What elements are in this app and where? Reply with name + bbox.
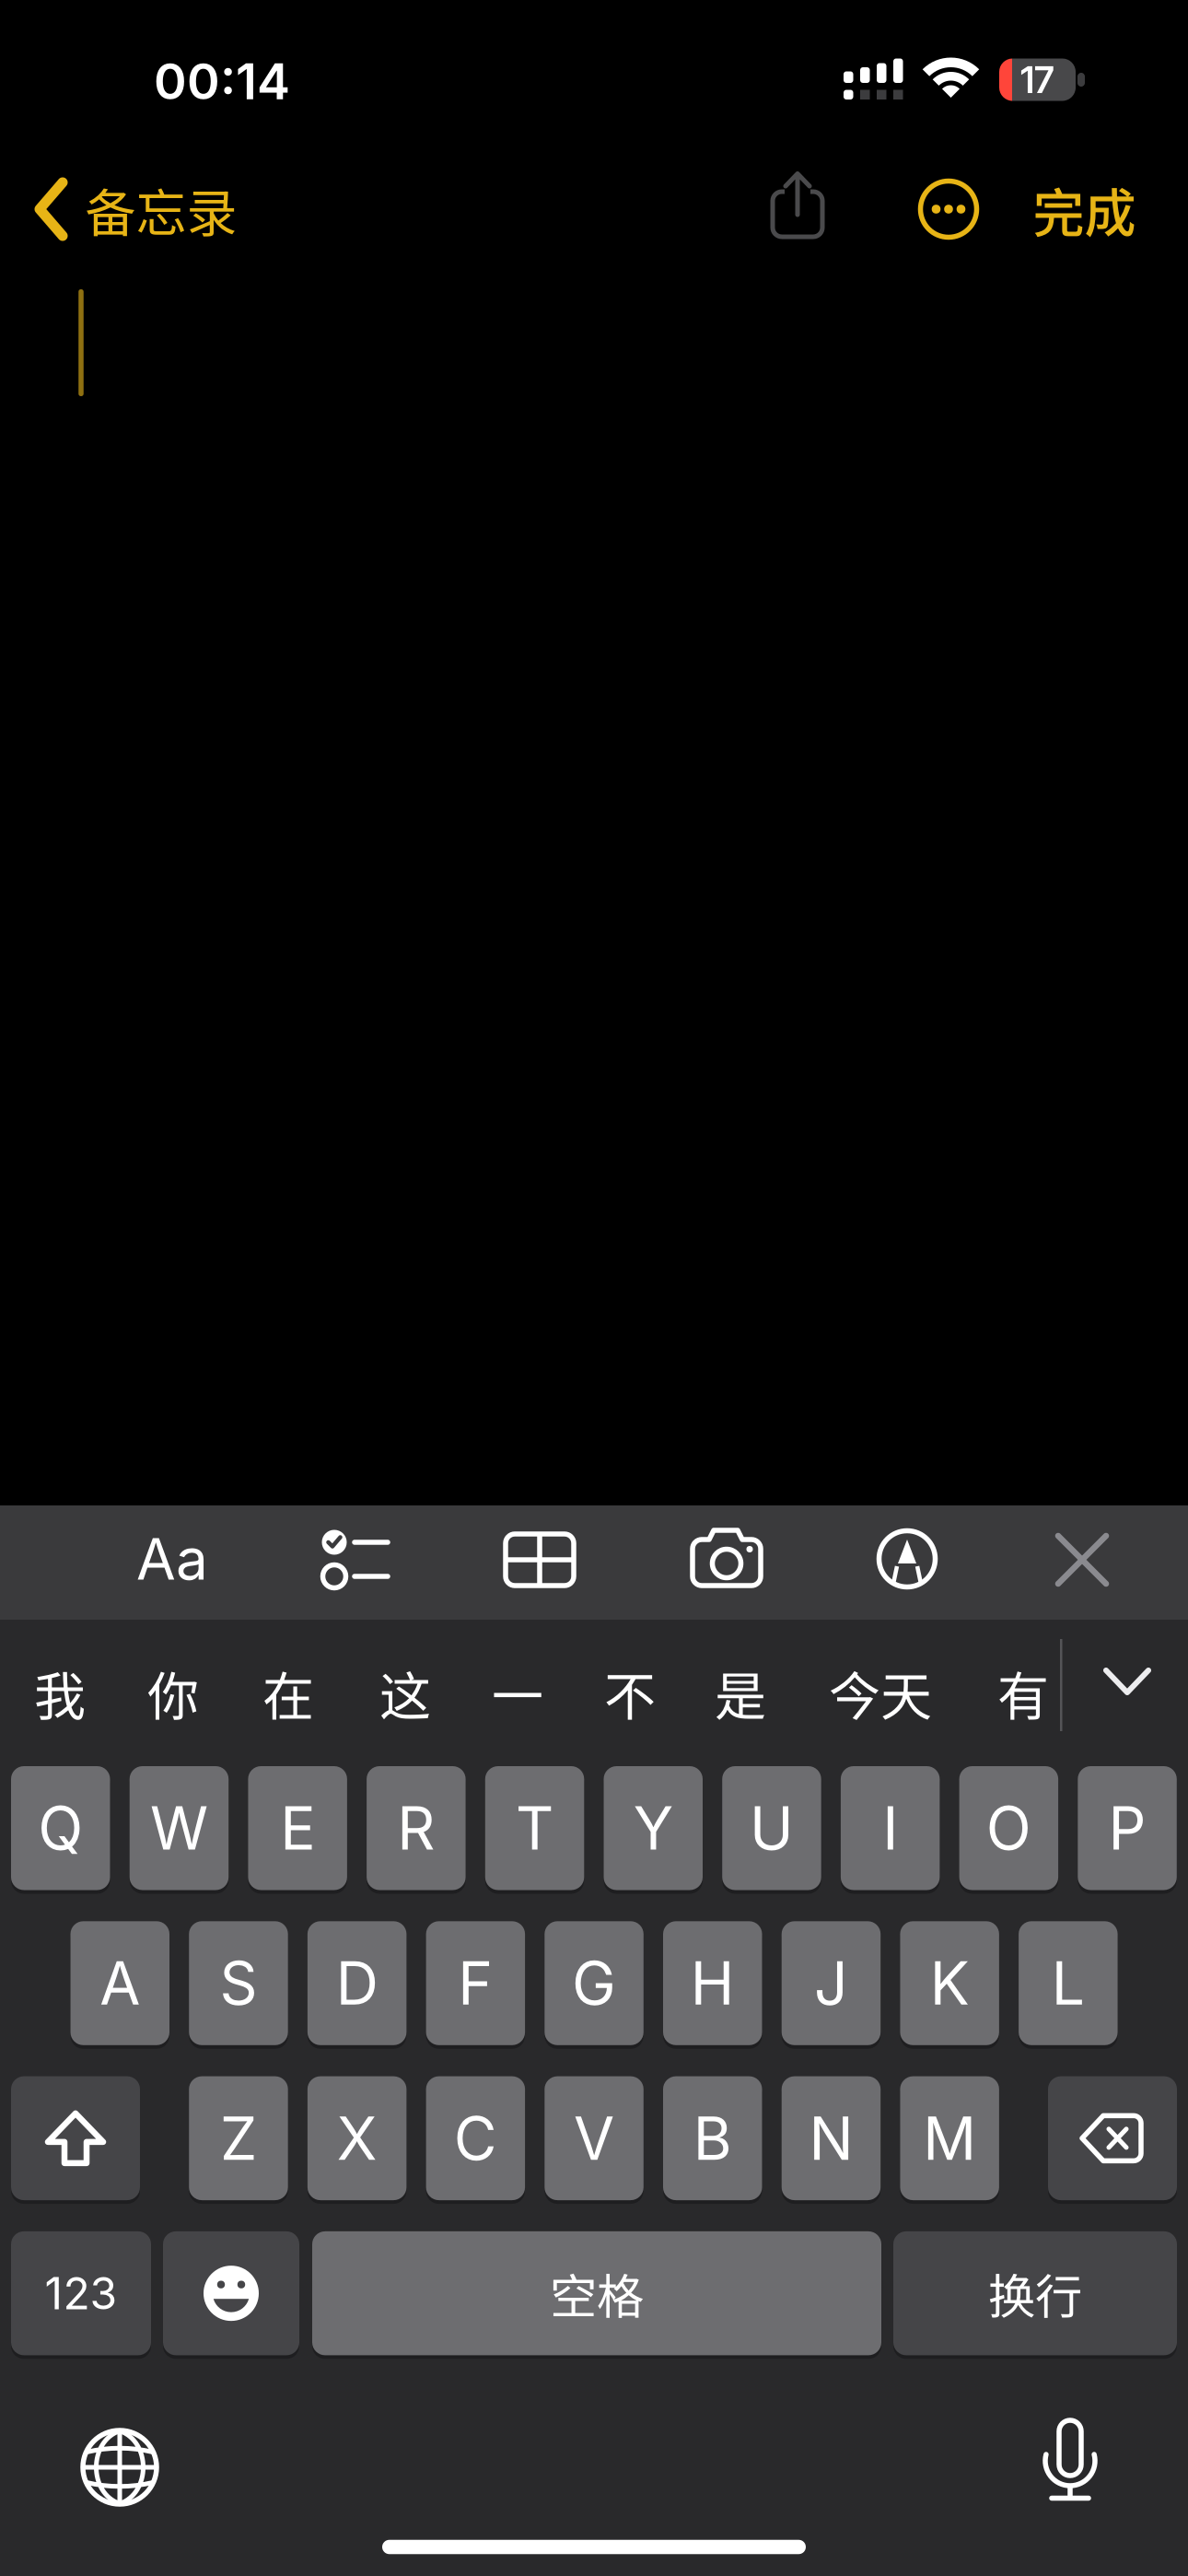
button[interactable]: A xyxy=(70,1921,169,2045)
button[interactable]: Y xyxy=(604,1766,703,1890)
staticText: Q xyxy=(38,1792,83,1864)
staticText: A xyxy=(100,1947,140,2019)
button[interactable]: 展开候选字 xyxy=(1103,1665,1151,1698)
staticText: U xyxy=(750,1792,794,1864)
button[interactable]: 是 xyxy=(715,1655,766,1730)
staticText: D xyxy=(336,1947,378,2019)
staticText: X xyxy=(337,2103,377,2174)
button[interactable]: M xyxy=(900,2076,999,2200)
staticText: O xyxy=(986,1792,1031,1864)
staticText: 是 xyxy=(715,1655,766,1730)
staticText: 在 xyxy=(262,1655,314,1730)
staticText: 00:14 xyxy=(154,51,290,111)
staticText: H xyxy=(691,1947,735,2019)
button[interactable]: H xyxy=(663,1921,762,2045)
staticText: F xyxy=(458,1947,493,2019)
button[interactable]: B xyxy=(663,2076,762,2200)
button[interactable]: T xyxy=(485,1766,584,1890)
button[interactable]: 空格 xyxy=(312,2231,881,2355)
staticText: Y xyxy=(633,1792,673,1864)
button[interactable]: 换行 xyxy=(893,2231,1177,2355)
button[interactable]: 这 xyxy=(379,1655,431,1730)
staticText: M xyxy=(923,2103,976,2174)
staticText: N xyxy=(809,2103,853,2174)
button[interactable]: L xyxy=(1019,1921,1118,2045)
staticText: 17 xyxy=(1020,57,1054,102)
staticText: T xyxy=(516,1792,553,1864)
button[interactable]: Q xyxy=(11,1766,110,1890)
staticText: 你 xyxy=(147,1655,199,1730)
staticText: R xyxy=(397,1792,435,1864)
staticText: 今天 xyxy=(829,1655,932,1730)
button[interactable]: Shift xyxy=(11,2076,140,2200)
button[interactable]: 一 xyxy=(492,1655,543,1730)
staticText: J xyxy=(814,1947,848,2019)
button[interactable]: F xyxy=(426,1921,525,2045)
button[interactable]: S xyxy=(189,1921,288,2045)
button[interactable]: 我 xyxy=(34,1655,86,1730)
button[interactable]: V xyxy=(545,2076,644,2200)
staticText: C xyxy=(454,2103,497,2174)
button[interactable]: 备忘录 xyxy=(28,163,239,255)
button[interactable]: W xyxy=(130,1766,229,1890)
staticText: 完成 xyxy=(1033,172,1136,247)
staticText: 换行 xyxy=(988,2259,1082,2328)
staticText: S xyxy=(220,1947,257,2019)
button[interactable]: O xyxy=(959,1766,1058,1890)
button[interactable]: 表格 xyxy=(503,1531,577,1588)
button[interactable]: J xyxy=(782,1921,881,2045)
staticText: 备忘录 xyxy=(85,172,237,246)
staticText: G xyxy=(572,1947,616,2019)
button[interactable]: P xyxy=(1078,1766,1177,1890)
button[interactable]: I xyxy=(841,1766,940,1890)
button[interactable]: 核对清单 xyxy=(320,1529,393,1590)
staticText: I xyxy=(882,1792,898,1864)
staticText: 这 xyxy=(379,1655,431,1730)
button[interactable]: 不 xyxy=(604,1655,656,1730)
staticText: B xyxy=(693,2103,732,2174)
button[interactable]: 有 xyxy=(997,1655,1049,1730)
button[interactable]: 下一个键盘 xyxy=(78,2426,161,2509)
button[interactable]: E xyxy=(248,1766,347,1890)
staticText: 空格 xyxy=(550,2259,644,2328)
button[interactable]: 在 xyxy=(262,1655,314,1730)
button[interactable]: N xyxy=(782,2076,881,2200)
button[interactable]: 标记 xyxy=(873,1525,941,1593)
staticText: 一 xyxy=(492,1655,543,1730)
staticText: Z xyxy=(220,2103,257,2174)
staticText: P xyxy=(1108,1792,1146,1864)
button[interactable]: 表情符号 xyxy=(163,2231,299,2355)
staticText: L xyxy=(1052,1947,1085,2019)
button[interactable]: D xyxy=(307,1921,406,2045)
button[interactable]: 你 xyxy=(147,1655,199,1730)
button[interactable]: R xyxy=(367,1766,466,1890)
staticText: W xyxy=(150,1792,208,1864)
staticText: Aa xyxy=(136,1524,208,1593)
button[interactable]: X xyxy=(307,2076,406,2200)
staticText: E xyxy=(280,1792,315,1864)
staticText: 有 xyxy=(997,1655,1049,1730)
button[interactable]: 共享 xyxy=(761,158,834,251)
button[interactable]: 拍照 xyxy=(689,1527,764,1587)
button[interactable]: 格式 xyxy=(136,1524,208,1593)
button[interactable]: 完成 xyxy=(1033,172,1136,247)
button[interactable]: 今天 xyxy=(829,1655,932,1730)
staticText: V xyxy=(574,2103,614,2174)
button[interactable]: 听写 xyxy=(1035,2418,1105,2507)
button[interactable]: Z xyxy=(189,2076,288,2200)
button[interactable]: 更多 xyxy=(916,177,981,241)
staticText: 不 xyxy=(604,1655,656,1730)
button[interactable]: C xyxy=(426,2076,525,2200)
button[interactable]: K xyxy=(900,1921,999,2045)
button[interactable]: U xyxy=(722,1766,821,1890)
staticText: K xyxy=(930,1947,969,2019)
button[interactable]: 关闭 xyxy=(1054,1532,1110,1587)
button[interactable]: 删除 xyxy=(1048,2076,1177,2200)
staticText: 123 xyxy=(45,2267,117,2320)
staticText: 我 xyxy=(34,1655,86,1730)
button[interactable]: 123 xyxy=(11,2231,151,2355)
button[interactable]: G xyxy=(545,1921,644,2045)
